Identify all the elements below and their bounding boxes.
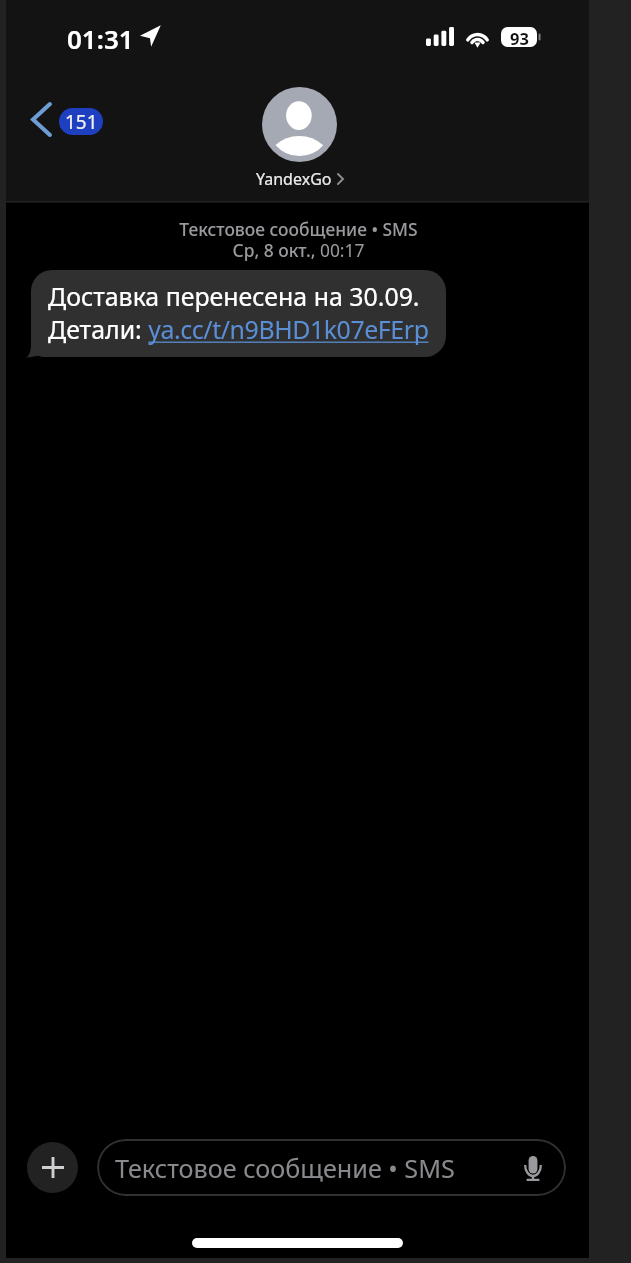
button[interactable]: YandexGo xyxy=(256,168,344,190)
staticText: 01:31 xyxy=(67,21,134,56)
staticText: 93 xyxy=(510,27,529,47)
staticText: YandexGo xyxy=(256,168,332,190)
staticText: Текстовое сообщение • SMS Ср, 8 окт., 00… xyxy=(179,217,418,262)
staticText: Текстовое сообщение • SMS xyxy=(115,1151,455,1185)
button[interactable]: Текстовое сообщение • SMS xyxy=(97,1139,566,1196)
staticText: 151 xyxy=(65,109,98,135)
button[interactable]: Back, 151 unread xyxy=(31,102,103,137)
button[interactable]: Contact avatar xyxy=(262,87,337,162)
button[interactable]: Add attachment xyxy=(27,1142,78,1193)
button[interactable]: Voice message xyxy=(518,1153,548,1183)
button[interactable]: Доставка перенесена на 30.09. Детали: ya… xyxy=(31,270,446,357)
staticText: Доставка перенесена на 30.09. Детали: ya… xyxy=(48,279,429,347)
